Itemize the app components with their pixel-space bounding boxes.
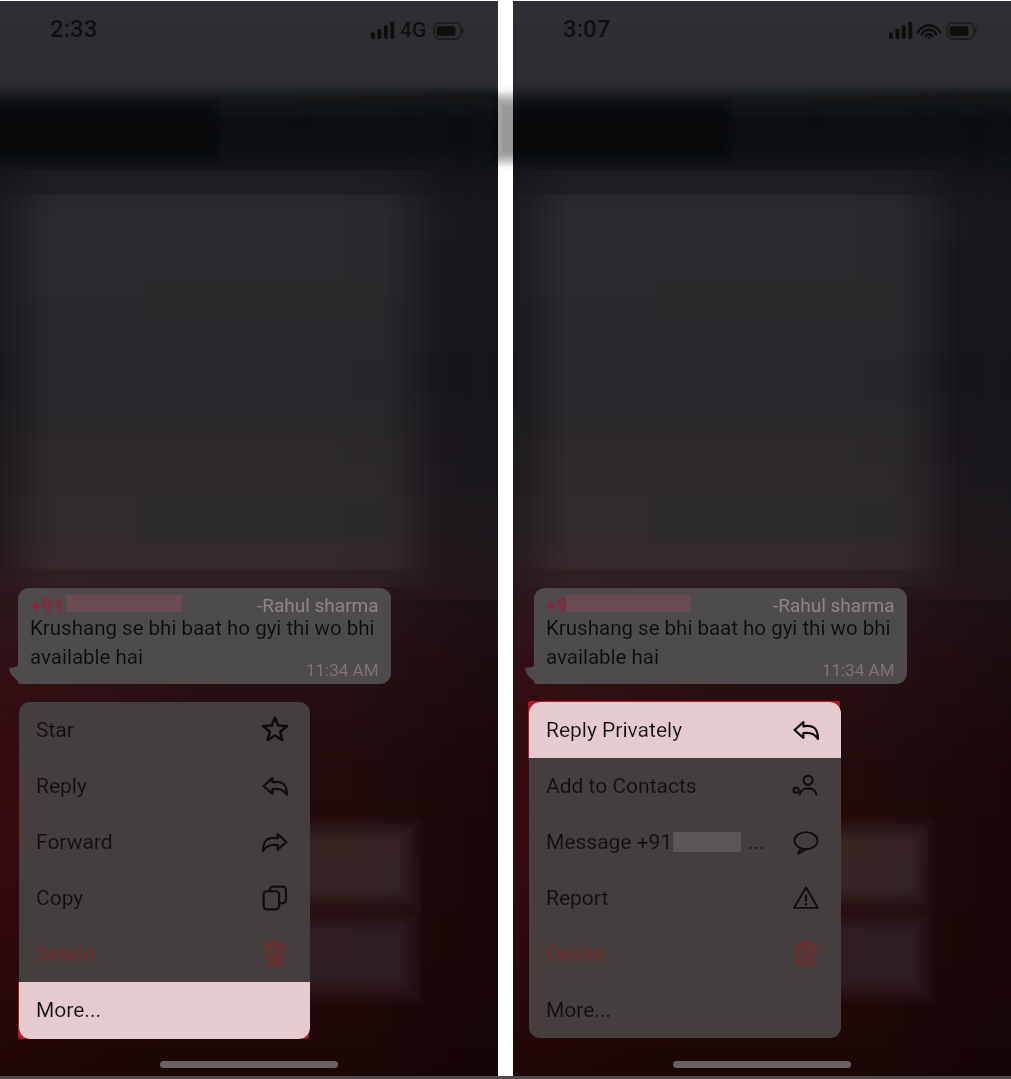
staticText: Report: [546, 886, 609, 911]
staticText: More...: [546, 998, 611, 1023]
staticText: ...: [748, 830, 765, 855]
button[interactable]: Report: [529, 870, 841, 926]
staticText: Reply: [36, 774, 87, 799]
staticText: Delete: [546, 942, 606, 967]
staticText: Message +91: [546, 830, 673, 855]
other: Delete: [262, 941, 288, 967]
staticText: 11:34 AM: [822, 660, 895, 680]
other: Message +91: [793, 829, 819, 855]
staticText: +91: [30, 594, 64, 617]
staticText: Add to Contacts: [546, 774, 697, 799]
staticText: More...: [36, 998, 101, 1023]
button[interactable]: Add to Contacts: [529, 758, 841, 814]
staticText: 3:07: [563, 15, 611, 43]
staticText: Copy: [36, 886, 84, 911]
staticText: Star: [36, 718, 74, 743]
button[interactable]: Reply Privately: [529, 702, 841, 758]
button[interactable]: Forward: [19, 814, 310, 870]
other: Reply Privately: [793, 717, 819, 743]
button[interactable]: Reply: [19, 758, 310, 814]
staticText: Reply Privately: [546, 718, 683, 743]
staticText: Forward: [36, 830, 113, 855]
staticText: Krushang se bhi baat ho gyi thi wo bhi a…: [546, 616, 904, 669]
staticText: +91: [546, 594, 580, 617]
other: Copy: [262, 885, 288, 911]
button[interactable]: Star: [19, 702, 310, 758]
other: Report: [793, 885, 819, 911]
staticText: 4G: [400, 18, 427, 43]
other: Delete: [793, 941, 819, 967]
staticText: -Rahul sharma: [773, 594, 895, 616]
staticText: 2:33: [50, 15, 98, 43]
button[interactable]: More...: [19, 982, 310, 1039]
other: Star: [262, 717, 288, 743]
button[interactable]: Delete: [529, 926, 841, 982]
button[interactable]: Delete: [19, 926, 310, 982]
staticText: -Rahul sharma: [257, 594, 379, 616]
other: Forward: [262, 829, 288, 855]
staticText: Delete: [36, 942, 96, 967]
button[interactable]: Message +91: [529, 814, 841, 870]
staticText: 11:34 AM: [306, 660, 379, 680]
other: Add to Contacts: [793, 773, 819, 799]
staticText: Krushang se bhi baat ho gyi thi wo bhi a…: [30, 616, 388, 669]
button[interactable]: More...: [529, 982, 841, 1038]
button[interactable]: Copy: [19, 870, 310, 926]
other: Reply: [262, 773, 288, 799]
